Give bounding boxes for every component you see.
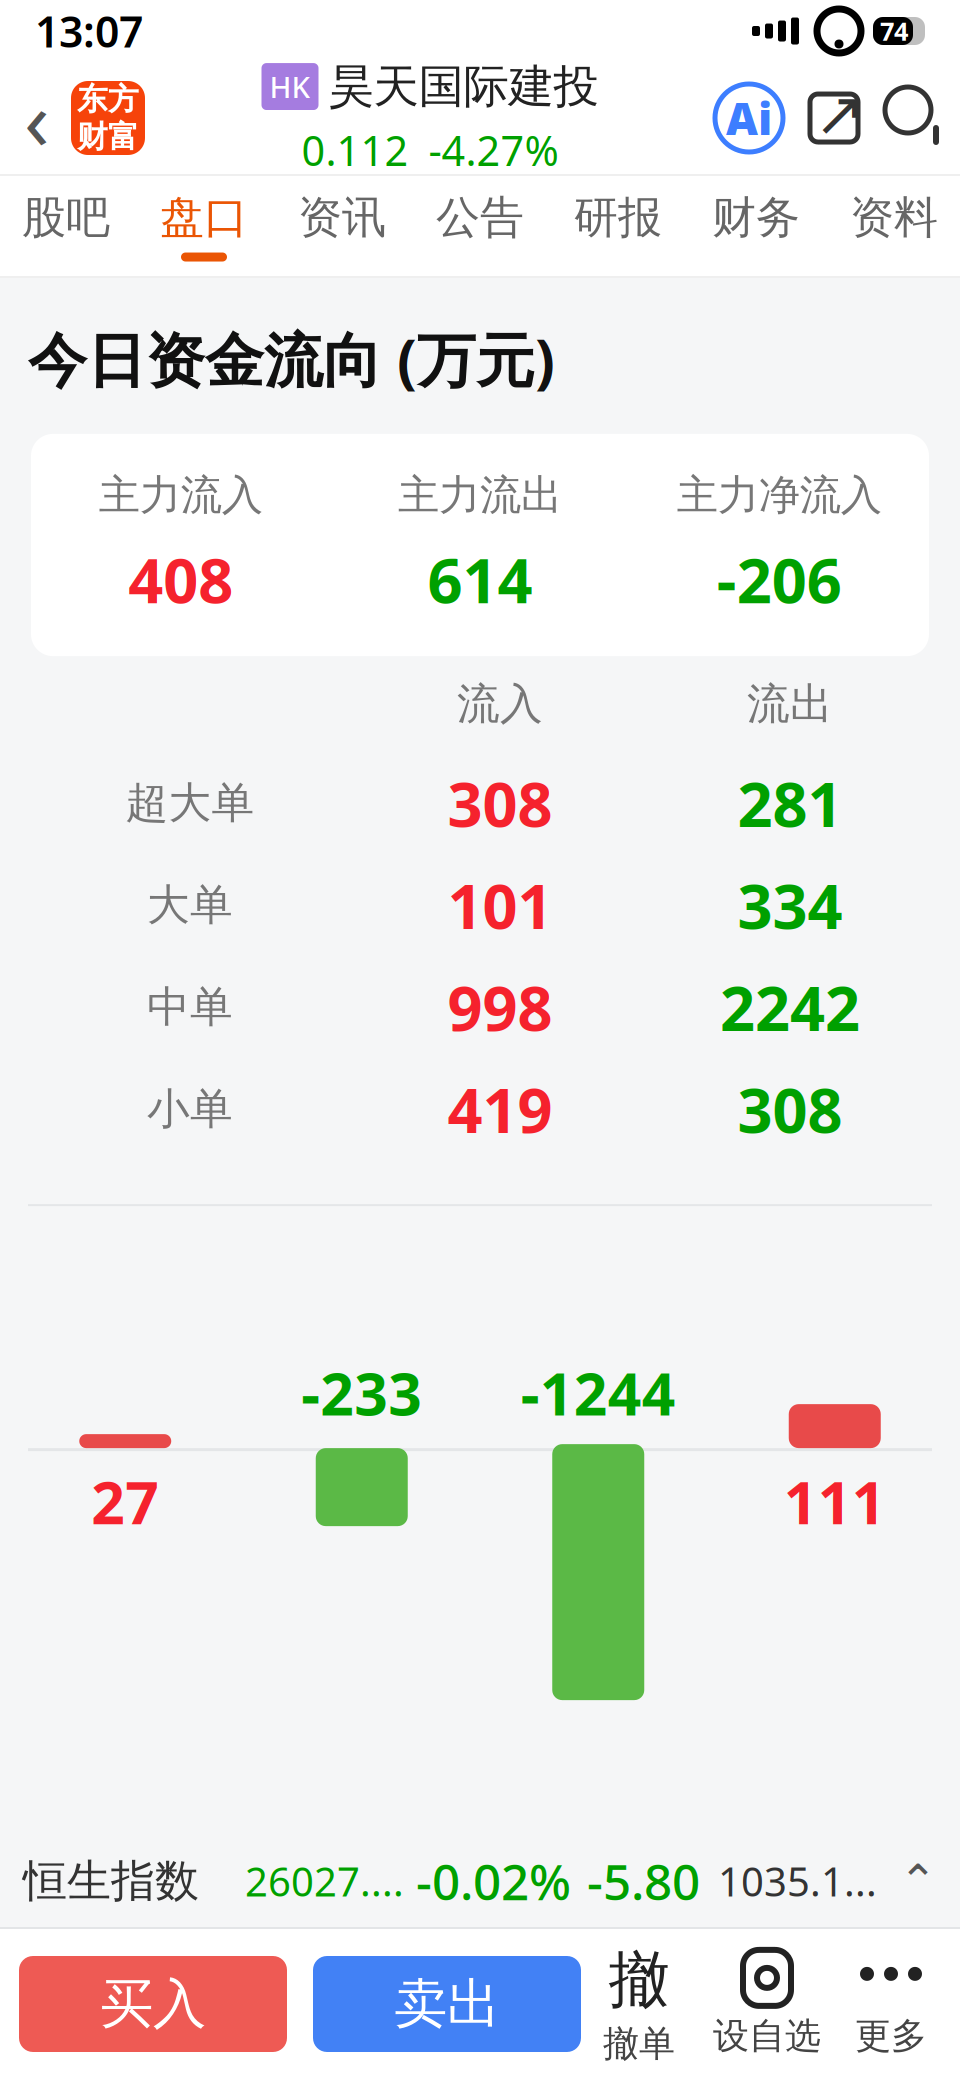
staticText: -5.80 <box>587 1848 700 1914</box>
staticText: ⌃ <box>899 1855 937 1907</box>
staticText: 614 <box>427 539 532 620</box>
staticText: 308 <box>447 762 552 844</box>
staticText: ↗ <box>814 79 865 149</box>
staticText: 资料 <box>850 190 938 244</box>
staticText: 26027.... <box>245 1854 404 1907</box>
staticText: 主力净流入 <box>677 470 882 521</box>
staticText: 设自选 <box>713 2014 821 2058</box>
staticText: 买入 <box>100 1971 206 2037</box>
button[interactable]: 卖出 <box>313 1956 581 2052</box>
staticText: Ai <box>726 89 772 147</box>
staticText: HK <box>269 67 310 106</box>
button[interactable]: 设自选 <box>705 1950 829 2058</box>
staticText: -0.02% <box>416 1848 571 1914</box>
staticText: 主力流出 <box>398 470 562 521</box>
button[interactable]: 财务 <box>687 176 825 276</box>
staticText: 334 <box>737 864 842 946</box>
button[interactable]: AI 助手 <box>715 84 783 152</box>
staticText: 中单 <box>147 981 233 1033</box>
button[interactable]: 恒生指数 <box>0 1835 960 1927</box>
staticText: 公告 <box>436 190 524 244</box>
staticText: 盘口 <box>160 190 248 244</box>
button[interactable]: 撤 <box>589 1942 689 2066</box>
staticText: 恒生指数 <box>23 1854 199 1908</box>
staticText: 财富 <box>77 118 139 156</box>
button[interactable]: 返回 <box>9 76 65 160</box>
button[interactable]: 盘口 <box>135 176 273 276</box>
staticText: -206 <box>717 539 842 620</box>
staticText: -1244 <box>521 1354 676 1432</box>
staticText: 小单 <box>147 1083 233 1135</box>
staticText: 主力流入 <box>99 470 263 521</box>
staticText: ‹ <box>24 63 50 173</box>
staticText: 资讯 <box>298 190 386 244</box>
button[interactable]: 更多 <box>841 1950 941 2058</box>
staticText: 流出 <box>747 678 833 730</box>
staticText: 998 <box>447 966 552 1048</box>
button[interactable]: 搜索 <box>881 83 951 153</box>
staticText: 研报 <box>574 190 662 244</box>
staticText: 更多 <box>855 2014 927 2058</box>
staticText: 1035.1... <box>718 1854 877 1907</box>
staticText: 撤单 <box>603 2022 675 2066</box>
staticText: 东方 <box>77 80 139 118</box>
staticText: 13:07 <box>35 3 143 59</box>
staticText: 419 <box>447 1068 552 1150</box>
staticText: 0.112 <box>301 122 408 177</box>
staticText: 281 <box>737 762 842 844</box>
button[interactable]: 东方财富首页 <box>71 81 145 155</box>
staticText: -4.27% <box>428 122 558 177</box>
staticText: 2242 <box>720 966 860 1048</box>
staticText: 财务 <box>712 190 800 244</box>
button[interactable]: 股吧 <box>0 176 135 276</box>
staticText: 超大单 <box>125 777 254 829</box>
staticText: 111 <box>784 1463 886 1540</box>
button[interactable]: 资讯 <box>273 176 411 276</box>
button[interactable]: 分享 <box>799 83 869 153</box>
button[interactable]: 资料 <box>825 176 960 276</box>
staticText: -233 <box>301 1354 422 1432</box>
button[interactable]: 研报 <box>549 176 687 276</box>
staticText: 今日资金流向 (万元) <box>28 320 555 398</box>
staticText: 股吧 <box>22 190 110 244</box>
staticText: 308 <box>737 1068 842 1150</box>
staticText: 27 <box>91 1463 159 1540</box>
staticText: 大单 <box>147 879 233 931</box>
button[interactable]: 公告 <box>411 176 549 276</box>
staticText: 74 <box>880 14 908 48</box>
staticText: 流入 <box>457 678 543 730</box>
staticText: 昊天国际建投 <box>328 59 598 114</box>
staticText: 撤 <box>608 1942 669 2017</box>
staticText: 408 <box>128 539 233 620</box>
button[interactable]: 买入 <box>19 1956 287 2052</box>
staticText: 卖出 <box>394 1971 500 2037</box>
staticText: 101 <box>447 864 552 946</box>
